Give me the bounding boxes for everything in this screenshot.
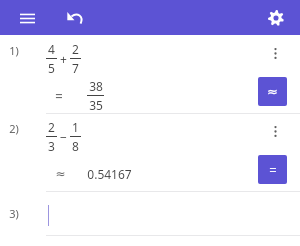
staticText: − xyxy=(60,129,67,145)
staticText: 35 xyxy=(89,97,103,113)
staticText: ≈ xyxy=(267,84,278,99)
staticText: 8 xyxy=(72,138,79,154)
staticText: ≈ xyxy=(55,167,66,181)
staticText: 2 xyxy=(48,119,55,135)
staticText: 2) xyxy=(9,121,19,136)
button[interactable]: Evaluate xyxy=(258,155,287,184)
staticText: = xyxy=(55,87,63,105)
staticText: = xyxy=(269,161,277,179)
button[interactable]: More options xyxy=(264,120,286,142)
button[interactable]: Approximate result xyxy=(258,77,287,106)
staticText: + xyxy=(60,51,67,67)
staticText: 3 xyxy=(48,138,55,154)
staticText: 1 xyxy=(72,119,79,135)
button[interactable]: New expression input xyxy=(46,198,262,232)
button[interactable]: More options xyxy=(264,42,286,64)
staticText: 38 xyxy=(89,78,103,94)
button[interactable]: Navigation menu xyxy=(14,5,40,31)
button[interactable]: 2 xyxy=(46,119,81,154)
staticText: 5 xyxy=(48,60,55,76)
button[interactable]: Settings xyxy=(262,4,290,32)
staticText: 2 xyxy=(72,41,79,57)
button[interactable]: 4 xyxy=(46,41,81,76)
staticText: 7 xyxy=(72,60,79,76)
staticText: 1) xyxy=(9,43,19,58)
staticText: 3) xyxy=(9,206,19,221)
staticText: 0.54167 xyxy=(87,166,132,182)
button[interactable]: Undo xyxy=(62,5,88,31)
staticText: 4 xyxy=(48,41,55,57)
